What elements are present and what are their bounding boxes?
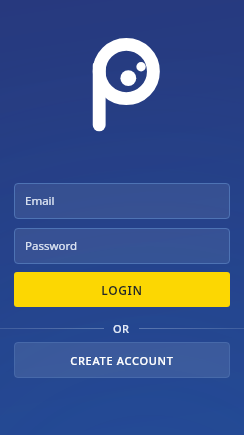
staticText: OR xyxy=(113,321,130,335)
button[interactable]: Email xyxy=(14,183,230,219)
staticText: Email xyxy=(25,193,55,209)
staticText: Password xyxy=(25,238,78,254)
staticText: LOGIN xyxy=(101,282,143,298)
staticText: CREATE ACCOUNT xyxy=(70,353,174,368)
button[interactable]: LOGIN xyxy=(14,272,230,307)
button[interactable]: Password xyxy=(14,228,230,264)
button[interactable]: CREATE ACCOUNT xyxy=(14,342,230,378)
